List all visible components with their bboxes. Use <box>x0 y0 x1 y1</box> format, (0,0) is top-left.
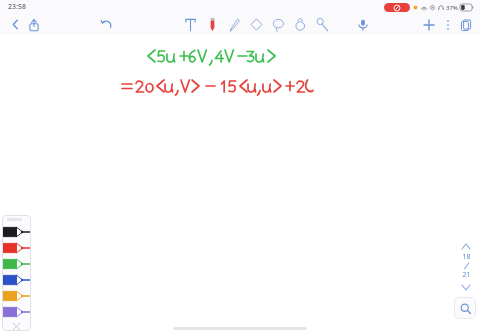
button[interactable]: Close palette <box>2 322 31 331</box>
button[interactable]: Pages <box>455 14 477 35</box>
button[interactable]: Record audio <box>352 14 374 35</box>
button[interactable]: Back <box>4 14 26 35</box>
button[interactable]: Laser pointer <box>314 14 331 35</box>
button[interactable]: Previous page <box>458 240 474 252</box>
button[interactable]: Highlighter <box>226 14 243 35</box>
button[interactable]: Share <box>23 14 45 35</box>
button[interactable]: Text <box>182 14 199 35</box>
button[interactable]: Undo <box>96 14 118 35</box>
button[interactable]: More options <box>438 15 458 35</box>
staticText: 37% <box>446 4 458 12</box>
button[interactable]: Next page <box>458 281 474 293</box>
button[interactable] <box>2 224 31 240</box>
button[interactable]: Lasso <box>270 14 287 35</box>
button[interactable] <box>2 256 31 272</box>
staticText: 18 <box>462 252 471 262</box>
button[interactable] <box>2 272 31 288</box>
button[interactable] <box>2 304 31 320</box>
staticText: 21 <box>462 270 471 280</box>
button[interactable]: Eraser <box>248 14 265 35</box>
button[interactable] <box>2 288 31 304</box>
button[interactable]: Add <box>418 14 440 35</box>
button[interactable] <box>2 240 31 256</box>
button[interactable]: Pen <box>204 14 221 35</box>
button[interactable]: Search <box>454 297 476 319</box>
button[interactable]: Shapes <box>292 14 309 35</box>
staticText: 23:58 <box>8 2 26 12</box>
